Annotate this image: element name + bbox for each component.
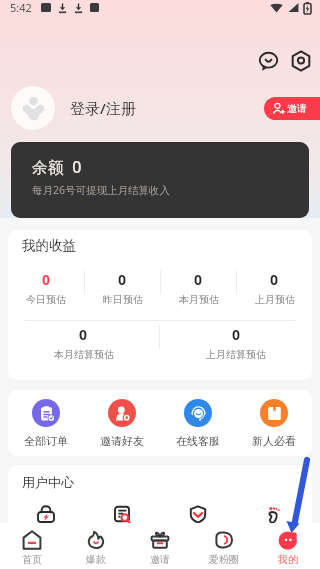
staticText: 0 — [232, 325, 241, 344]
staticText: 爆款 — [86, 553, 106, 566]
staticText: 在线客服 — [176, 434, 220, 448]
button[interactable]: Orders — [84, 501, 160, 527]
staticText: 爱粉圈 — [209, 553, 239, 566]
button[interactable]: 0 — [8, 270, 84, 306]
button[interactable]: Settings — [285, 46, 316, 77]
button[interactable]: 首页 — [0, 523, 64, 569]
button[interactable]: 余额 0 — [11, 142, 309, 218]
staticText: 今日预估 — [26, 293, 66, 306]
staticText: 本月结算预估 — [54, 348, 114, 361]
button[interactable]: 0 — [8, 325, 159, 361]
button[interactable]: 0 — [160, 325, 312, 361]
button[interactable]: 爆款 — [64, 523, 128, 569]
button[interactable]: 邀请 — [264, 97, 320, 120]
button[interactable]: 邀请好友 — [84, 399, 160, 448]
staticText: 本月预估 — [179, 293, 219, 306]
staticText: 新人必看 — [252, 434, 296, 448]
button[interactable]: 全部订单 — [8, 399, 84, 448]
staticText: 邀请 — [150, 553, 170, 566]
button[interactable]: 爱粉圈 — [192, 523, 256, 569]
staticText: 登录/注册 — [70, 98, 136, 118]
staticText: 0 — [118, 270, 127, 289]
button[interactable]: 我的 — [256, 523, 320, 569]
staticText: 余额 0 — [32, 156, 82, 178]
staticText: 全部订单 — [24, 434, 68, 448]
button[interactable]: Avatar — [11, 86, 55, 130]
button[interactable]: 新人必看 — [236, 399, 312, 448]
button[interactable]: Messages — [253, 46, 284, 77]
staticText: 0 — [270, 270, 279, 289]
button[interactable]: 邀请 — [128, 523, 192, 569]
staticText: 首页 — [22, 553, 42, 566]
staticText: 邀请好友 — [100, 434, 144, 448]
staticText: 邀请 — [287, 102, 307, 115]
staticText: 上月预估 — [255, 293, 295, 306]
staticText: 昨日预估 — [103, 293, 143, 306]
staticText: 我的 — [278, 553, 298, 566]
staticText: 0 — [194, 270, 203, 289]
staticText: 每月26号可提现上月结算收入 — [32, 183, 171, 197]
staticText: 我的收益 — [22, 237, 76, 254]
button[interactable]: 0 — [85, 270, 160, 306]
staticText: 用户中心 — [22, 474, 74, 490]
staticText: 5:42 — [10, 0, 32, 15]
staticText: 0 — [42, 270, 51, 289]
button[interactable]: Security — [160, 501, 236, 527]
button[interactable]: 0 — [161, 270, 236, 306]
staticText: 上月结算预估 — [206, 348, 266, 361]
button[interactable]: Wallet — [8, 501, 84, 527]
staticText: 0 — [79, 325, 88, 344]
button[interactable]: 0 — [237, 270, 312, 306]
button[interactable]: Footprint — [236, 501, 312, 527]
button[interactable]: 在线客服 — [160, 399, 236, 448]
